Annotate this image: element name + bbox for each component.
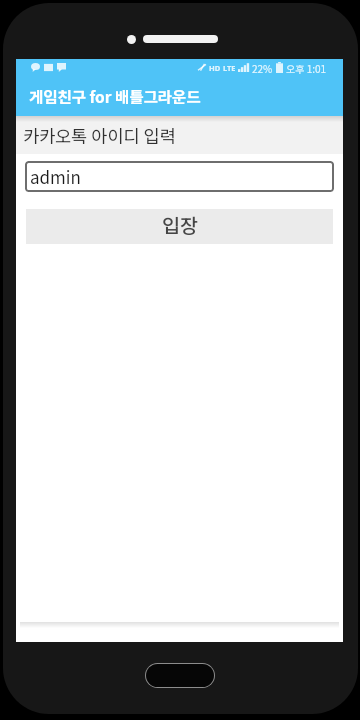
staticText: LTE: [223, 63, 236, 73]
button[interactable]: 입장: [26, 209, 333, 244]
staticText: HD: [209, 63, 221, 73]
staticText: 게임친구 for 배틀그라운드: [29, 85, 201, 107]
staticText: 22%: [252, 61, 273, 75]
staticText: 카카오톡 아이디 입력: [23, 123, 176, 148]
staticText: 입장: [162, 210, 198, 238]
staticText: admin: [30, 164, 81, 189]
staticText: 오후 1:01: [286, 61, 327, 75]
button[interactable]: admin: [25, 161, 334, 192]
